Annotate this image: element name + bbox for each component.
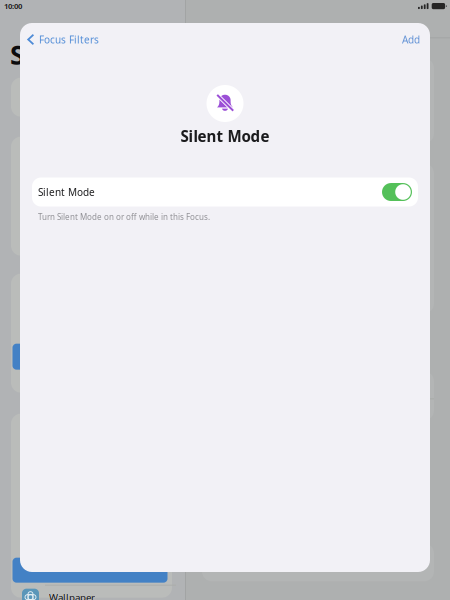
staticText: Add [402,33,420,46]
staticText: Silent Mode [180,126,269,146]
button[interactable]: Silent Mode [32,177,418,206]
staticText: Focus Filters [39,33,99,46]
staticText: 10:00 [4,1,22,11]
staticText: Wallpaper [49,590,95,600]
button[interactable]: Add [397,28,425,51]
staticText: Settings [10,36,120,73]
button[interactable]: Focus Filters [22,28,104,51]
staticText: Turn Silent Mode on or off while in this… [38,211,210,222]
staticText: Silent Mode [38,185,95,199]
